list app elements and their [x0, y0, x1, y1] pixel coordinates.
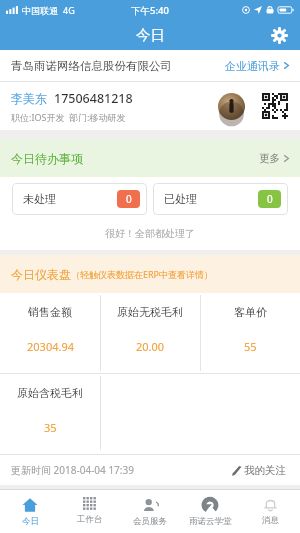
- staticText: 17506481218: [54, 90, 133, 107]
- staticText: 青岛雨诺网络信息股份有限公司: [11, 59, 172, 73]
- staticText: 4G: [63, 4, 75, 16]
- button[interactable]: 李美东: [0, 82, 300, 130]
- staticText: 中国联通: [22, 5, 58, 16]
- staticText: 今日: [136, 26, 165, 44]
- button[interactable]: 客单价: [200, 293, 300, 373]
- button[interactable]: 消息: [240, 490, 300, 533]
- button[interactable]: 今日: [0, 490, 60, 533]
- button[interactable]: Settings: [266, 22, 292, 48]
- staticText: 消息: [262, 515, 279, 526]
- staticText: 35: [44, 420, 57, 435]
- button[interactable]: QR code: [262, 93, 288, 119]
- staticText: 李美东: [11, 91, 47, 106]
- button[interactable]: 雨诺云学堂: [180, 490, 240, 533]
- button[interactable]: 销售金额: [0, 293, 100, 373]
- staticText: 未处理: [23, 192, 56, 206]
- staticText: 0: [126, 192, 132, 206]
- staticText: 更多: [259, 152, 280, 165]
- staticText: 雨诺云学堂: [189, 516, 232, 527]
- staticText: 企业通讯录: [225, 59, 280, 73]
- button[interactable]: 未处理: [12, 183, 147, 215]
- staticText: 我的关注: [244, 464, 286, 477]
- staticText: 更新时间 2018-04-04 17:39: [11, 463, 134, 477]
- staticText: 原始无税毛利: [117, 305, 183, 319]
- staticText: 20304.94: [27, 339, 74, 354]
- staticText: 会员服务: [133, 516, 167, 527]
- staticText: 今日待办事项: [11, 151, 83, 166]
- staticText: 很好！全部都处理了: [0, 227, 300, 240]
- button[interactable]: 今日待办事项: [0, 139, 300, 177]
- staticText: 下午5:40: [131, 4, 169, 17]
- button[interactable]: 工作台: [60, 490, 120, 533]
- staticText: 今日: [22, 516, 39, 527]
- button[interactable]: 青岛雨诺网络信息股份有限公司: [0, 50, 300, 81]
- button[interactable]: 会员服务: [120, 490, 180, 533]
- staticText: 客单价: [234, 305, 267, 319]
- staticText: 工作台: [77, 514, 103, 525]
- staticText: 55: [244, 339, 257, 354]
- staticText: 已处理: [164, 192, 197, 206]
- staticText: （轻触仪表数据在ERP中查看详情）: [71, 268, 214, 280]
- button[interactable]: 今日仪表盘: [0, 255, 300, 293]
- staticText: 今日仪表盘: [11, 267, 71, 282]
- staticText: 原始含税毛利: [17, 386, 83, 400]
- staticText: 销售金额: [28, 305, 72, 319]
- button[interactable]: 原始无税毛利: [100, 293, 200, 373]
- staticText: 20.00: [136, 339, 165, 354]
- staticText: 职位:IOS开发 部门:移动研发: [11, 111, 126, 123]
- button[interactable]: 已处理: [153, 183, 288, 215]
- button[interactable]: 我的关注: [230, 462, 288, 479]
- staticText: 0: [267, 192, 273, 206]
- button[interactable]: 原始含税毛利: [0, 374, 100, 454]
